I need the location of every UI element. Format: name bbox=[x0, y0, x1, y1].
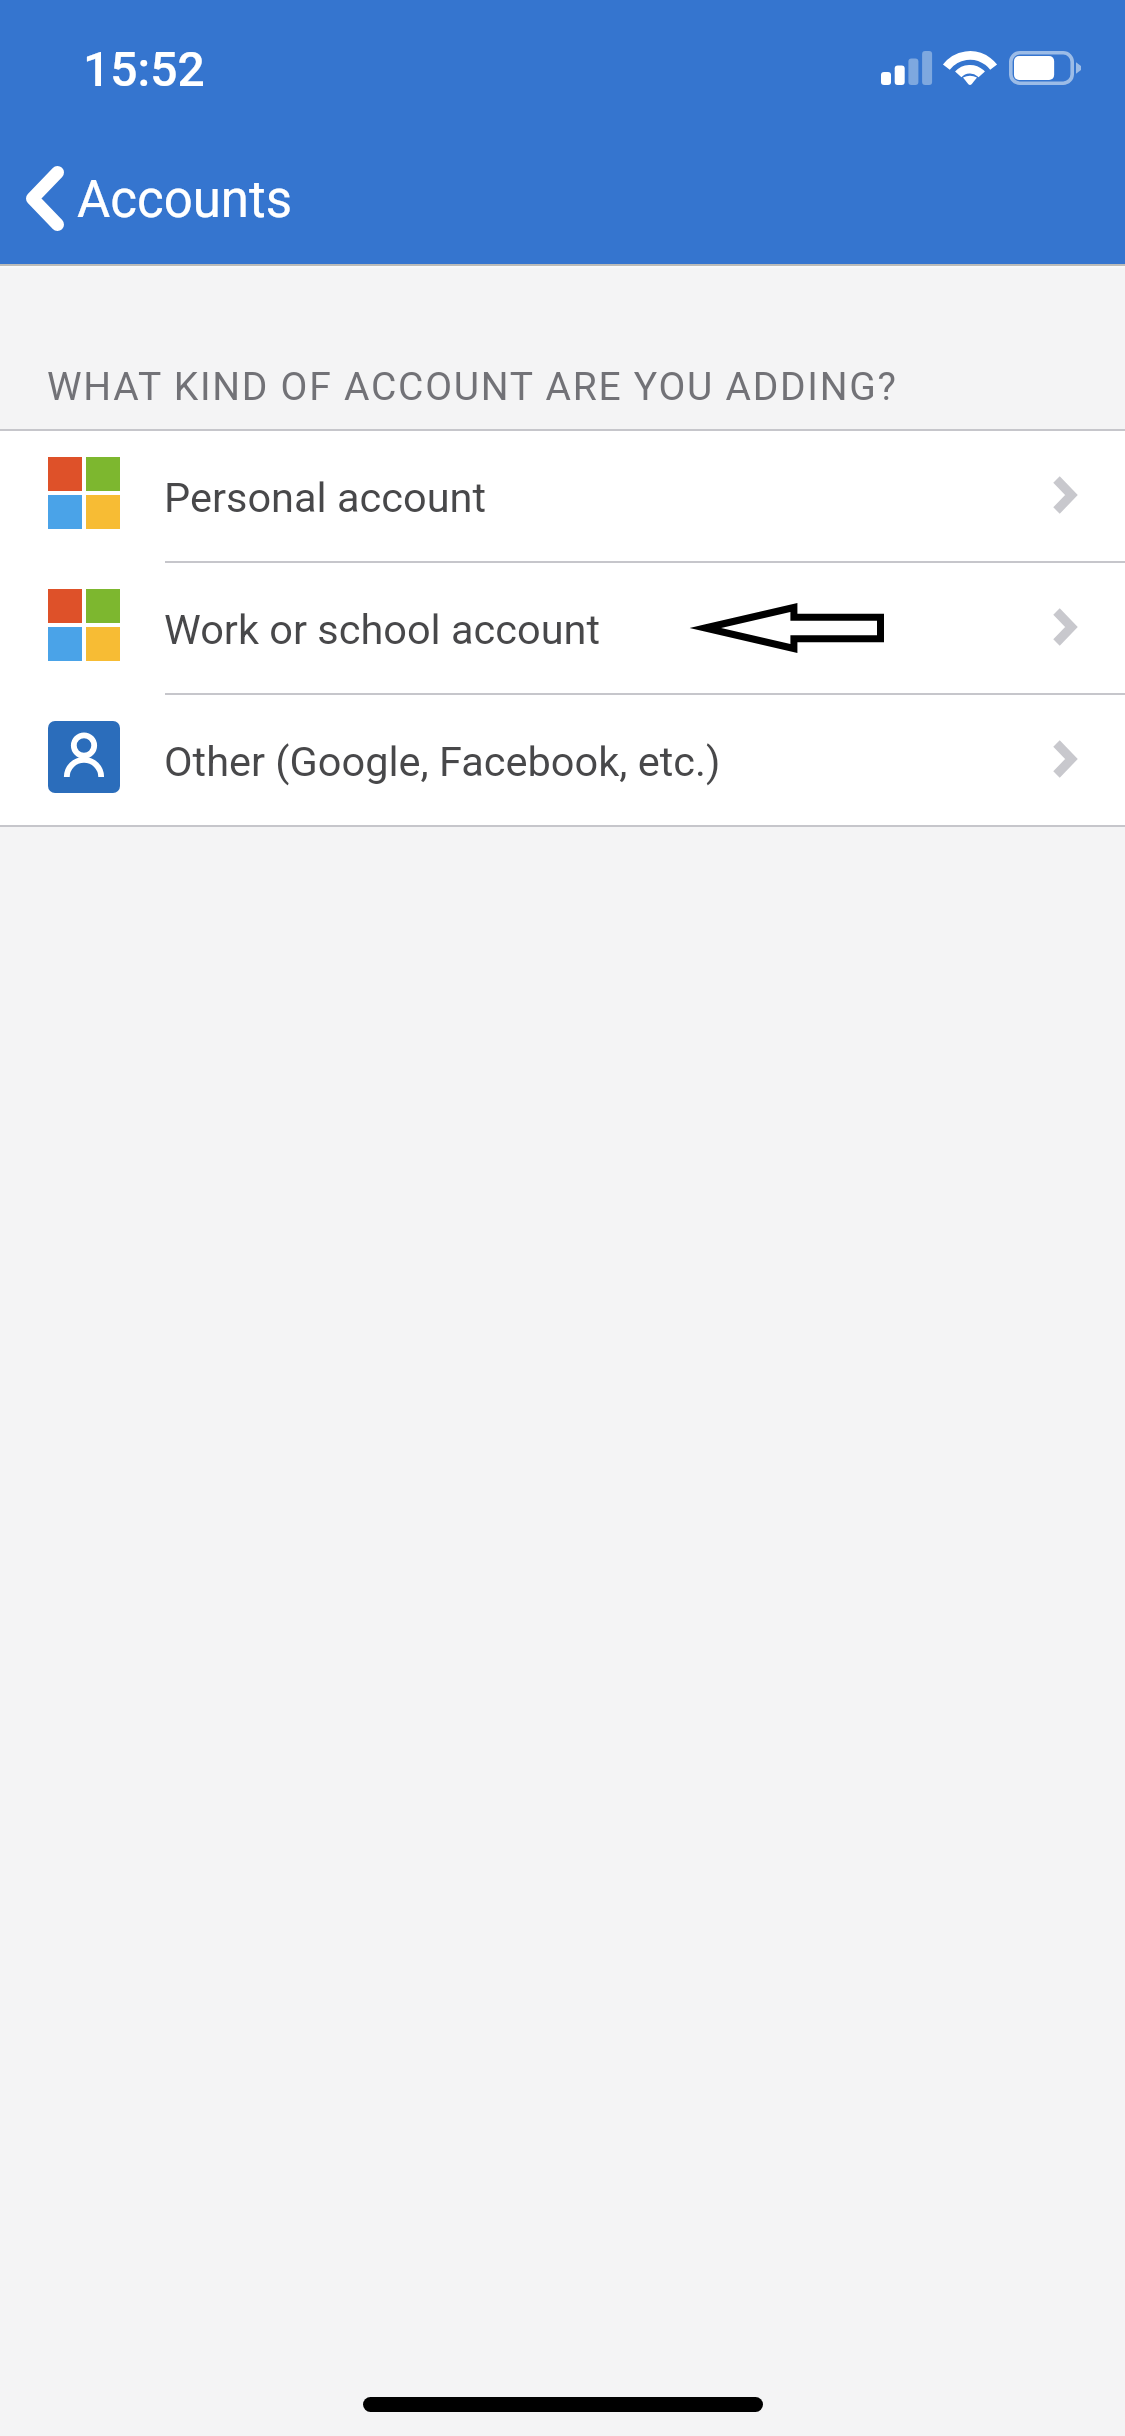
button[interactable]: Back bbox=[0, 150, 321, 250]
staticText: Personal account bbox=[164, 473, 1052, 522]
staticText: WHAT KIND OF ACCOUNT ARE YOU ADDING? bbox=[47, 364, 898, 410]
button[interactable]: Other (Google, Facebook, etc.) bbox=[0, 693, 1125, 825]
staticText: Accounts bbox=[77, 170, 293, 230]
other: Back bbox=[26, 166, 64, 231]
button[interactable]: Work or school account bbox=[0, 561, 1125, 693]
button[interactable]: Personal account bbox=[0, 429, 1125, 561]
staticText: Work or school account bbox=[164, 605, 1052, 654]
staticText: 15:52 bbox=[83, 41, 205, 97]
staticText: Other (Google, Facebook, etc.) bbox=[164, 737, 1052, 786]
